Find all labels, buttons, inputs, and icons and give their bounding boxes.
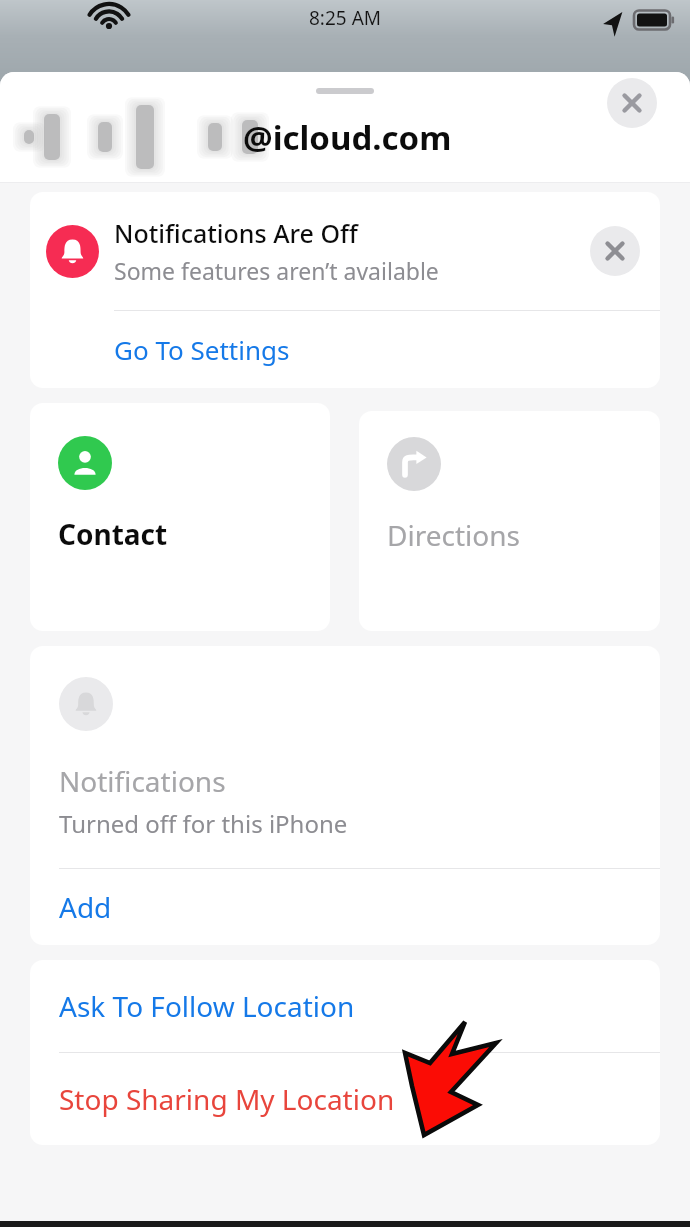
button[interactable]: Directions [359,411,660,631]
staticText: Notifications [59,762,226,800]
button[interactable]: Contact [30,403,330,631]
button[interactable]: Close [607,78,657,128]
button[interactable]: Ask To Follow Location [30,960,660,1052]
staticText: 8:25 AM [309,5,382,31]
button[interactable]: Go To Settings [30,311,660,388]
staticText: Go To Settings [114,332,290,367]
staticText: Directions [387,516,520,554]
staticText: Add [59,888,112,926]
staticText: @icloud.com [243,115,452,160]
staticText: Contact [58,515,168,553]
staticText: Stop Sharing My Location [59,1080,395,1118]
button[interactable]: Dismiss notification warning [590,226,640,276]
staticText: Notifications Are Off [114,216,358,250]
staticText: Some features aren’t available [114,255,439,286]
button[interactable]: Notifications [30,646,660,868]
staticText: Turned off for this iPhone [59,807,348,840]
button[interactable]: Notifications Are Off [30,192,660,310]
button[interactable]: Stop Sharing My Location [30,1053,660,1145]
staticText: Ask To Follow Location [59,987,355,1025]
button[interactable]: Add [30,869,660,945]
